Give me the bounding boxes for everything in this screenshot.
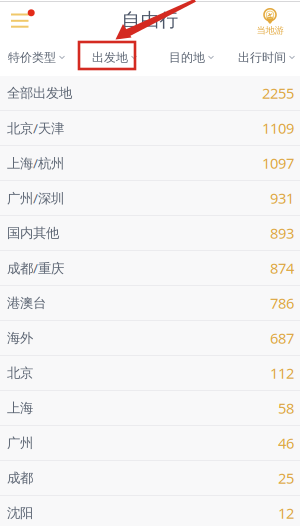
staticText: 海外 (7, 330, 33, 346)
staticText: 广州/深圳 (7, 189, 64, 207)
button[interactable]: 北京/天津 (0, 111, 300, 146)
staticText: 893 (270, 223, 294, 243)
staticText: 目的地 (169, 50, 205, 65)
staticText: 沈阳 (7, 505, 33, 521)
button[interactable]: 特价类型 (0, 38, 74, 77)
staticText: 上海 (7, 400, 33, 416)
staticText: 1109 (262, 118, 294, 138)
button[interactable]: 全部出发地 (0, 76, 300, 111)
button[interactable]: 上海/杭州 (0, 146, 300, 181)
staticText: 58 (278, 398, 294, 418)
button[interactable]: 北京 (0, 356, 300, 391)
button[interactable]: 上海 (0, 391, 300, 426)
button[interactable]: 当地游 (253, 8, 287, 36)
button[interactable]: 出行时间 (229, 38, 300, 77)
button[interactable]: 广州/深圳 (0, 181, 300, 216)
staticText: 港澳台 (7, 295, 46, 311)
staticText: 12 (278, 503, 294, 523)
button[interactable]: 成都/重庆 (0, 251, 300, 286)
staticText: 25 (278, 468, 294, 488)
staticText: 786 (270, 293, 294, 313)
staticText: 国内其他 (7, 225, 59, 241)
button[interactable]: 目的地 (154, 38, 229, 77)
staticText: 当地游 (256, 25, 283, 36)
button[interactable]: 出发地 (77, 38, 152, 77)
button[interactable]: 国内其他 (0, 216, 300, 251)
staticText: 成都 (7, 470, 33, 486)
button[interactable]: Menu (6, 9, 36, 31)
staticText: 出行时间 (238, 50, 286, 65)
staticText: 出发地 (92, 50, 128, 65)
staticText: 北京 (7, 365, 33, 381)
staticText: 931 (270, 188, 294, 208)
button[interactable]: 沈阳 (0, 496, 300, 526)
button[interactable]: 海外 (0, 321, 300, 356)
staticText: 成都/重庆 (7, 259, 64, 277)
staticText: 北京/天津 (7, 119, 64, 137)
staticText: 1097 (262, 153, 294, 173)
button[interactable]: 成都 (0, 461, 300, 496)
staticText: 2255 (262, 83, 294, 103)
staticText: 特价类型 (8, 50, 56, 65)
staticText: 上海/杭州 (7, 154, 64, 172)
staticText: 112 (270, 363, 294, 383)
staticText: 687 (270, 328, 294, 348)
staticText: 874 (270, 258, 294, 278)
button[interactable]: 广州 (0, 426, 300, 461)
staticText: 自由行 (121, 8, 178, 31)
button[interactable]: 港澳台 (0, 286, 300, 321)
staticText: 广州 (7, 435, 33, 451)
staticText: 46 (278, 433, 294, 453)
staticText: 全部出发地 (7, 85, 72, 101)
